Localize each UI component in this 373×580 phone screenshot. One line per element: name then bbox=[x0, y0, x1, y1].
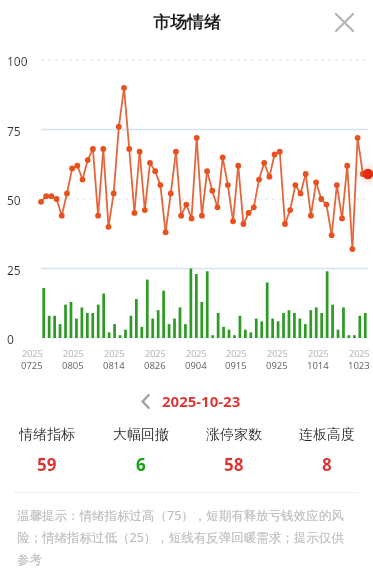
staticText: 2025 bbox=[104, 347, 125, 359]
staticText: 8 bbox=[322, 453, 332, 476]
button[interactable]: 大幅回撤 bbox=[94, 426, 187, 476]
staticText: 涨停家数 bbox=[206, 426, 262, 444]
staticText: 1023 bbox=[348, 359, 370, 372]
button[interactable]: Close bbox=[327, 5, 361, 39]
staticText: 2025 bbox=[226, 347, 247, 359]
staticText: 6 bbox=[136, 453, 146, 476]
button[interactable]: 2025-10-23 bbox=[162, 391, 241, 411]
staticText: 情绪指标 bbox=[19, 426, 75, 444]
button[interactable]: Previous day bbox=[133, 389, 157, 413]
staticText: 2025 bbox=[63, 347, 84, 359]
staticText: 0 bbox=[7, 331, 14, 347]
button[interactable]: 连板高度 bbox=[280, 426, 373, 476]
staticText: 2025 bbox=[22, 347, 43, 359]
staticText: 58 bbox=[224, 453, 244, 476]
staticText: 0904 bbox=[185, 359, 207, 372]
staticText: 0826 bbox=[144, 359, 166, 372]
staticText: 100 bbox=[7, 53, 28, 69]
staticText: 0814 bbox=[103, 359, 125, 372]
staticText: 50 bbox=[7, 192, 21, 208]
staticText: 75 bbox=[7, 123, 21, 139]
staticText: 温馨提示：情绪指标过高（75），短期有释放亏钱效应的风险；情绪指标过低（25），… bbox=[17, 507, 356, 567]
staticText: 25 bbox=[7, 262, 21, 278]
staticText: 0915 bbox=[225, 359, 247, 372]
staticText: 连板高度 bbox=[299, 426, 355, 444]
staticText: 2025 bbox=[186, 347, 207, 359]
button[interactable]: 情绪指标 bbox=[0, 426, 94, 476]
button[interactable]: 涨停家数 bbox=[187, 426, 280, 476]
staticText: 2025 bbox=[308, 347, 329, 359]
staticText: 1014 bbox=[307, 359, 329, 372]
staticText: 59 bbox=[37, 453, 57, 476]
staticText: 大幅回撤 bbox=[113, 426, 169, 444]
staticText: 市场情绪 bbox=[153, 12, 221, 33]
staticText: 0805 bbox=[62, 359, 84, 372]
staticText: 2025 bbox=[267, 347, 288, 359]
staticText: 0725 bbox=[21, 359, 43, 372]
staticText: 2025 bbox=[145, 347, 166, 359]
staticText: 0925 bbox=[266, 359, 288, 372]
staticText: 2025 bbox=[349, 347, 370, 359]
